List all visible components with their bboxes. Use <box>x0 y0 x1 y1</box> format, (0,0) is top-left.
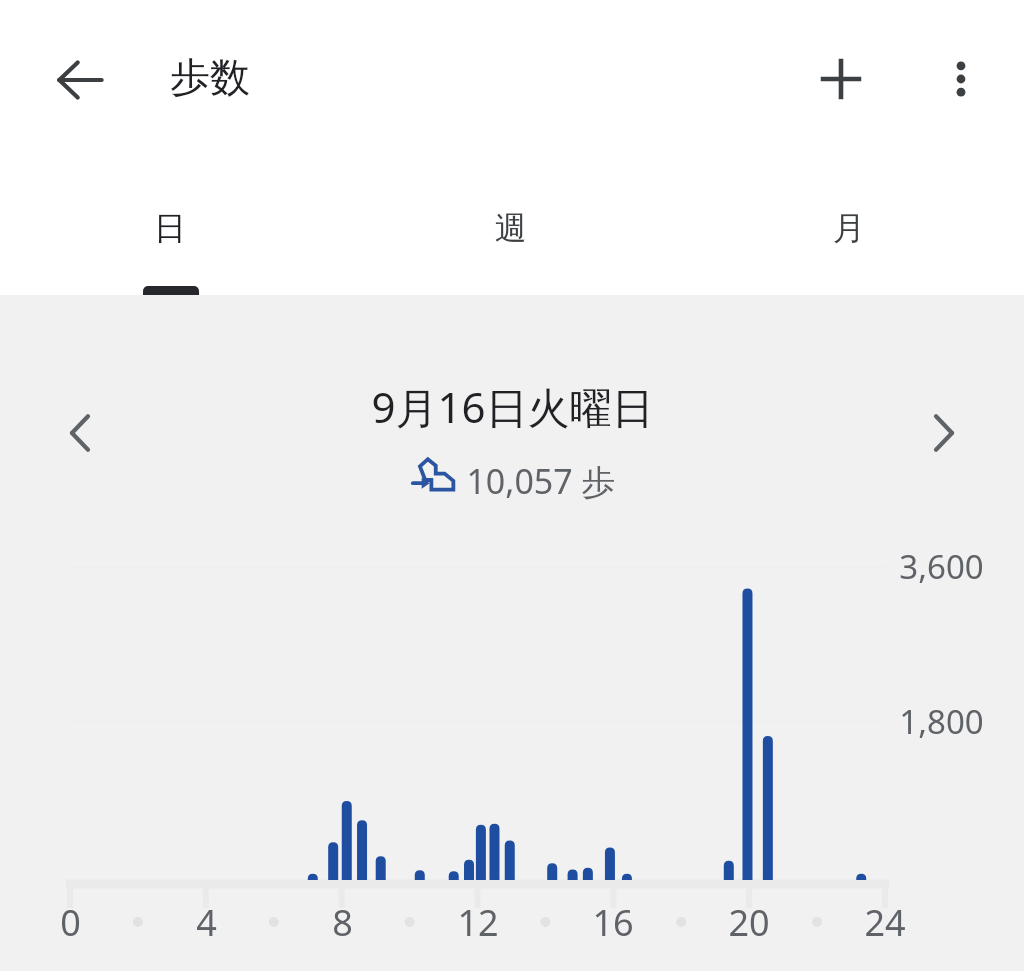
staticText: 9月16日火曜日 <box>371 378 654 435</box>
staticText: 週 <box>495 208 527 248</box>
button[interactable]: Add <box>801 39 881 119</box>
staticText: 4 <box>196 898 217 947</box>
button[interactable]: More options <box>921 39 1001 119</box>
staticText: 日 <box>154 208 186 248</box>
staticText: 0 <box>60 898 81 947</box>
staticText: 1,800 <box>899 699 984 744</box>
staticText: 24 <box>864 898 906 947</box>
button[interactable]: Previous day <box>40 393 120 473</box>
staticText: 12 <box>457 898 499 947</box>
staticText: 3,600 <box>899 544 984 589</box>
staticText: 8 <box>332 898 353 947</box>
button[interactable]: 週 <box>401 160 621 295</box>
staticText: 月 <box>833 208 865 248</box>
staticText: 歩数 <box>170 52 250 102</box>
staticText: 16 <box>592 898 634 947</box>
staticText: 20 <box>728 898 770 947</box>
button[interactable]: 月 <box>739 160 959 295</box>
button[interactable]: Back <box>40 40 120 120</box>
staticText: 10,057 歩 <box>466 458 616 504</box>
button[interactable]: 日 <box>60 160 280 295</box>
button[interactable]: Next day <box>904 393 984 473</box>
